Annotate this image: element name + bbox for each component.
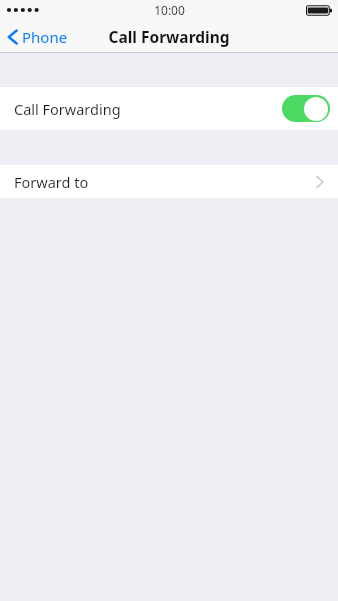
button[interactable]: Phone [0, 23, 76, 51]
staticText: Forward to [14, 172, 89, 192]
button[interactable]: Call Forwarding [0, 87, 338, 130]
button[interactable]: Call Forwarding toggle, on [282, 95, 330, 122]
staticText: 10:00 [154, 2, 185, 18]
staticText: Call Forwarding [14, 99, 121, 119]
button[interactable]: Forward to [0, 165, 338, 198]
staticText: Phone [22, 27, 68, 47]
staticText: Call Forwarding [108, 26, 230, 47]
